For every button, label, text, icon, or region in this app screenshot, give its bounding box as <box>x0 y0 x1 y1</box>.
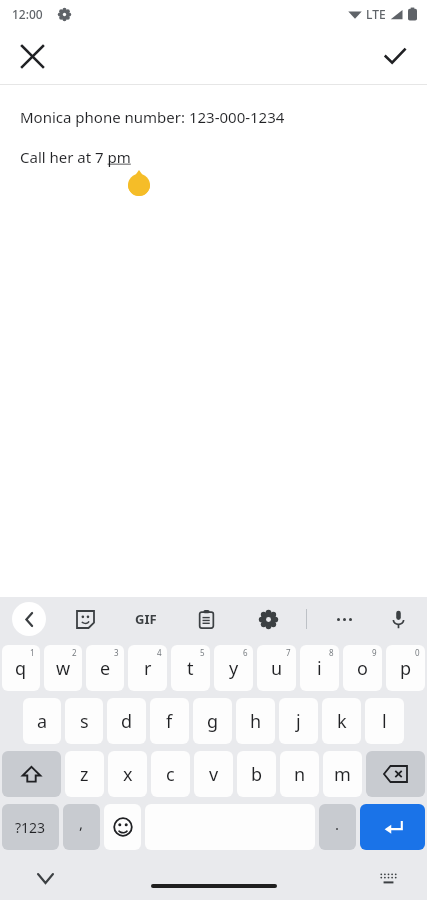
staticText: 3 <box>114 647 119 658</box>
button[interactable]: z <box>65 751 104 797</box>
staticText: r <box>144 656 152 681</box>
staticText: d <box>121 709 133 734</box>
staticText: 9 <box>372 647 377 658</box>
button[interactable]: Voice input <box>381 602 415 636</box>
button[interactable]: y <box>214 645 253 691</box>
button[interactable]: Period <box>319 804 356 850</box>
button[interactable]: Backspace <box>366 751 425 797</box>
staticText: g <box>207 709 219 734</box>
button[interactable]: d <box>107 698 146 744</box>
staticText: u <box>271 656 283 681</box>
staticText: 7 <box>286 647 291 658</box>
button[interactable]: j <box>279 698 318 744</box>
button[interactable]: c <box>151 751 190 797</box>
button[interactable]: l <box>365 698 404 744</box>
staticText: k <box>337 709 347 734</box>
staticText: 4 <box>157 647 162 658</box>
button[interactable]: e <box>86 645 124 691</box>
staticText: GIF <box>135 610 157 628</box>
staticText: c <box>166 762 175 787</box>
button[interactable]: Shift <box>2 751 61 797</box>
staticText: l <box>382 709 387 734</box>
button[interactable]: Close <box>8 32 56 80</box>
staticText: i <box>317 656 322 681</box>
button[interactable]: Back <box>12 602 46 636</box>
staticText: ?123 <box>15 818 46 837</box>
staticText: z <box>80 762 89 787</box>
button[interactable]: Stickers <box>68 602 102 636</box>
button[interactable]: r <box>128 645 167 691</box>
button[interactable]: Comma <box>63 804 100 850</box>
staticText: f <box>166 709 173 734</box>
button[interactable]: b <box>237 751 276 797</box>
staticText: 6 <box>243 647 248 658</box>
staticText: 12:00 <box>12 6 43 22</box>
staticText: j <box>296 709 301 734</box>
staticText: y <box>229 656 239 681</box>
staticText: b <box>251 762 263 787</box>
button[interactable]: u <box>257 645 296 691</box>
staticText: 8 <box>329 647 334 658</box>
button[interactable]: Settings <box>251 602 285 636</box>
button[interactable]: t <box>171 645 210 691</box>
button[interactable]: ?123 <box>2 804 59 850</box>
staticText: m <box>334 762 351 787</box>
staticText: 1 <box>30 647 35 658</box>
button[interactable]: g <box>193 698 232 744</box>
staticText: Call her at 7 pm <box>20 147 131 167</box>
staticText: 0 <box>415 647 420 658</box>
button[interactable]: m <box>323 751 362 797</box>
button[interactable]: More options <box>327 602 361 636</box>
button[interactable]: Enter <box>360 804 425 850</box>
staticText: p <box>400 656 412 681</box>
button[interactable]: Change keyboard <box>371 861 405 895</box>
button[interactable]: i <box>300 645 339 691</box>
button[interactable]: GIF <box>124 602 168 636</box>
button[interactable]: o <box>343 645 382 691</box>
button[interactable]: v <box>194 751 233 797</box>
staticText: x <box>123 762 133 787</box>
staticText: v <box>209 762 219 787</box>
staticText: w <box>56 656 71 681</box>
button[interactable]: Hide keyboard <box>28 861 62 895</box>
button[interactable]: Emoji <box>104 804 141 850</box>
staticText: q <box>15 656 27 681</box>
staticText: . <box>335 814 340 834</box>
button[interactable]: x <box>108 751 147 797</box>
staticText: o <box>357 656 368 681</box>
staticText: t <box>187 656 194 681</box>
staticText: 5 <box>200 647 205 658</box>
staticText: , <box>79 813 84 833</box>
button[interactable]: h <box>236 698 275 744</box>
button[interactable]: s <box>65 698 103 744</box>
button[interactable]: f <box>150 698 189 744</box>
staticText: LTE <box>366 6 386 22</box>
staticText: s <box>80 709 89 734</box>
button[interactable]: a <box>23 698 61 744</box>
staticText: e <box>100 656 111 681</box>
button[interactable]: w <box>44 645 82 691</box>
button[interactable]: n <box>280 751 319 797</box>
staticText: 2 <box>72 647 77 658</box>
button[interactable]: p <box>386 645 425 691</box>
staticText: n <box>294 762 306 787</box>
staticText: a <box>37 709 48 734</box>
button[interactable]: Clipboard <box>189 602 223 636</box>
button[interactable]: q <box>2 645 40 691</box>
staticText: Monica phone number: 123-000-1234 <box>20 107 285 127</box>
button[interactable]: Save <box>371 32 419 80</box>
staticText: h <box>250 709 262 734</box>
button[interactable]: k <box>322 698 361 744</box>
